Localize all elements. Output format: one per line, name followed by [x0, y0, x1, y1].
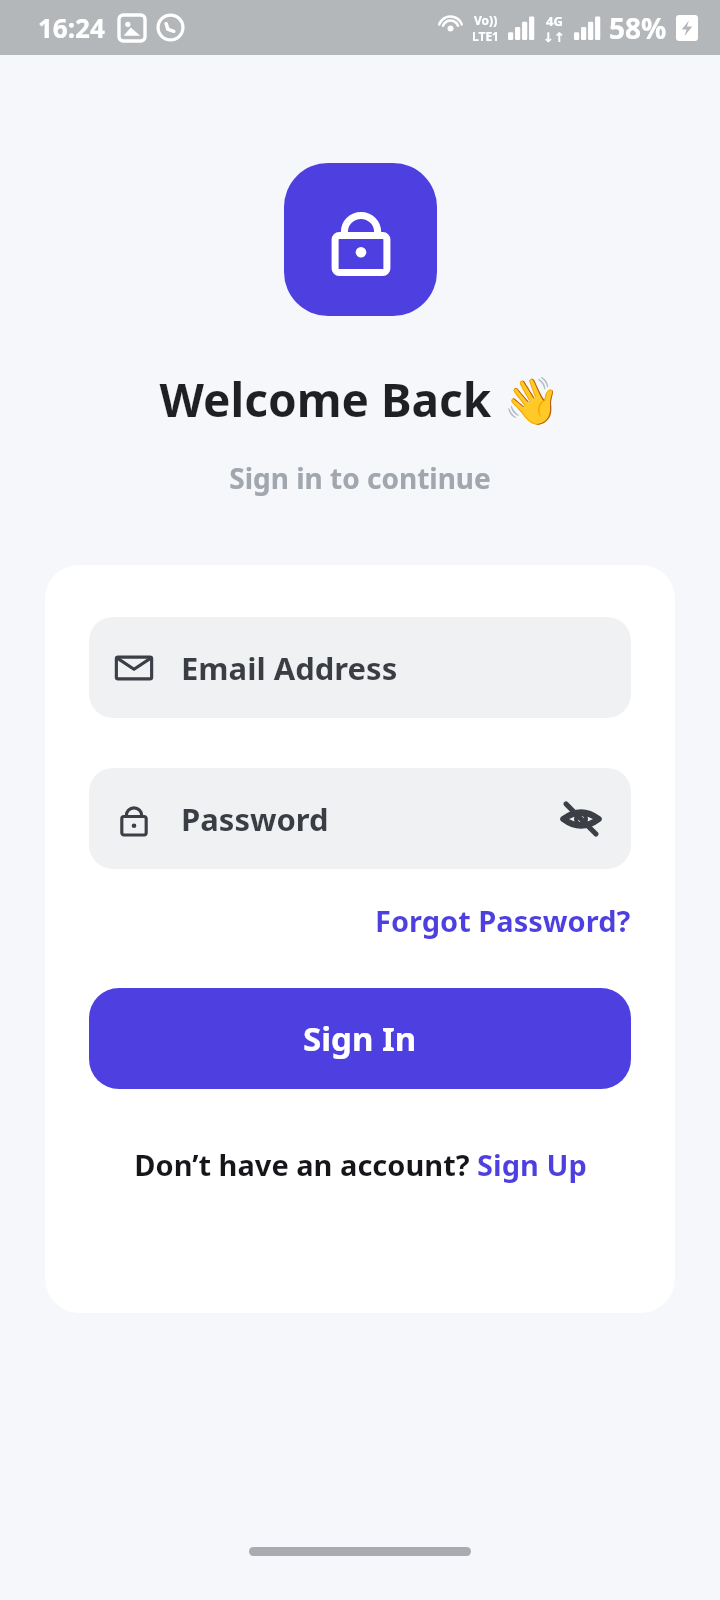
button[interactable]: Don’t have an account? Sign Up [89, 1139, 631, 1190]
staticText: Don’t have an account? Sign Up [134, 1145, 587, 1184]
staticText: Sign in to continue [229, 459, 491, 497]
staticText: Welcome Back 👋 [159, 368, 561, 431]
button[interactable]: Sign In [89, 988, 631, 1089]
staticText: 16:24 [38, 10, 105, 45]
staticText: 4G [546, 12, 563, 30]
button[interactable]: Show password [555, 793, 607, 845]
staticText: 58% [609, 9, 667, 47]
staticText: ↓↑ [543, 30, 565, 45]
staticText: Sign In [303, 1016, 417, 1061]
staticText: Email Address [181, 647, 398, 689]
staticText: Vo)) [474, 12, 498, 28]
staticText: LTE1 [472, 28, 499, 44]
button[interactable]: Email Address [89, 617, 631, 718]
button[interactable]: Password [89, 768, 631, 869]
staticText: Password [181, 798, 329, 840]
staticText: Forgot Password? [375, 901, 631, 940]
button[interactable]: Forgot Password? [375, 893, 631, 948]
